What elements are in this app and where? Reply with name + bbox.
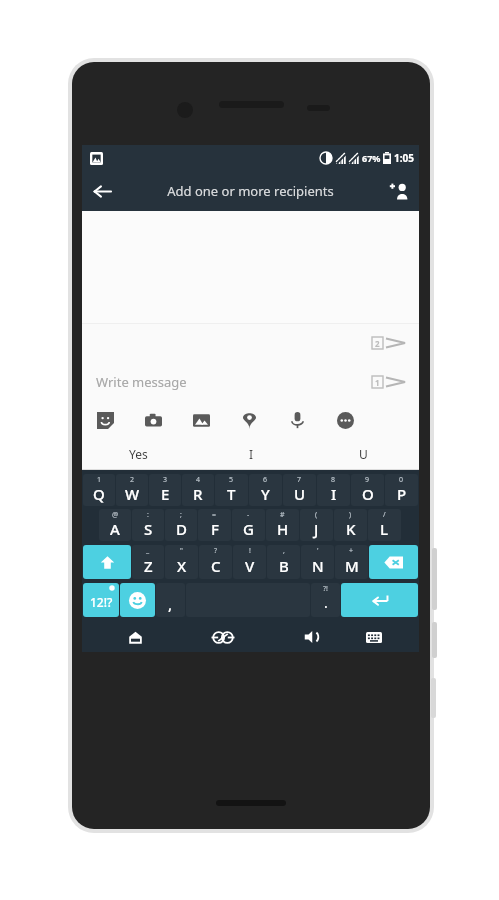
button[interactable]: Shift: [83, 545, 131, 579]
button[interactable]: More: [332, 407, 358, 433]
button[interactable]: 4: [182, 474, 214, 506]
staticText: J: [314, 519, 319, 539]
staticText: I: [331, 484, 337, 504]
button[interactable]: Keyboard settings: [361, 624, 387, 650]
staticText: ?: [214, 546, 218, 556]
button[interactable]: @: [99, 509, 131, 541]
button[interactable]: Backspace: [369, 545, 418, 579]
staticText: C: [211, 556, 221, 576]
button[interactable]: ?: [199, 545, 232, 579]
staticText: 8: [331, 475, 336, 485]
staticText: 1: [375, 377, 380, 388]
button[interactable]: Voice: [284, 407, 310, 433]
button[interactable]: Send SIM 1: [372, 375, 405, 389]
button[interactable]: Theme: [122, 624, 148, 650]
button[interactable]: 6: [249, 474, 282, 506]
staticText: =: [212, 510, 217, 520]
button[interactable]: 8: [317, 474, 350, 506]
button[interactable]: ,: [267, 545, 300, 579]
staticText: 0: [399, 475, 404, 485]
button[interactable]: U: [307, 438, 419, 469]
button[interactable]: 2: [116, 474, 148, 506]
staticText: 12!?: [90, 594, 113, 610]
button[interactable]: ): [334, 509, 367, 541]
staticText: K: [346, 519, 356, 539]
button[interactable]: ": [165, 545, 198, 579]
button[interactable]: -: [232, 509, 265, 541]
button[interactable]: #: [266, 509, 299, 541]
staticText: Y: [261, 484, 270, 504]
button[interactable]: _: [132, 545, 164, 579]
staticText: ): [349, 510, 352, 520]
button[interactable]: (: [300, 509, 333, 541]
button[interactable]: +: [335, 545, 368, 579]
staticText: -: [247, 510, 250, 520]
staticText: N: [312, 556, 324, 576]
button[interactable]: ,: [156, 583, 185, 617]
button[interactable]: 1: [83, 474, 115, 506]
staticText: 1:05: [394, 151, 414, 165]
staticText: _: [146, 546, 150, 556]
staticText: 4: [196, 475, 201, 485]
staticText: G: [243, 519, 254, 539]
button[interactable]: ': [301, 545, 334, 579]
staticText: :: [147, 510, 149, 520]
button[interactable]: Gallery: [188, 407, 214, 433]
button[interactable]: 3: [149, 474, 181, 506]
button[interactable]: Sticker: [92, 407, 118, 433]
staticText: 67%: [362, 152, 381, 164]
staticText: ": [180, 546, 183, 556]
button[interactable]: 9: [351, 474, 384, 506]
button[interactable]: Symbols: [83, 583, 119, 617]
staticText: Add one or more recipients: [167, 182, 334, 200]
staticText: O: [362, 484, 374, 504]
staticText: A: [110, 519, 120, 539]
staticText: 1: [97, 475, 102, 485]
staticText: 2: [130, 475, 135, 485]
staticText: @: [112, 510, 119, 520]
staticText: 2: [375, 338, 380, 349]
staticText: T: [227, 484, 236, 504]
staticText: E: [161, 484, 170, 504]
button[interactable]: Sound: [298, 624, 324, 650]
staticText: L: [380, 519, 389, 539]
button[interactable]: :: [132, 509, 164, 541]
button[interactable]: Swipe input: [208, 622, 238, 652]
button[interactable]: I: [195, 438, 307, 469]
staticText: .: [324, 593, 328, 612]
staticText: H: [277, 519, 289, 539]
button[interactable]: 5: [215, 474, 248, 506]
button[interactable]: /: [368, 509, 401, 541]
button[interactable]: Emoji: [120, 583, 155, 617]
button[interactable]: 0: [385, 474, 418, 506]
button[interactable]: Yes: [82, 438, 195, 469]
staticText: I: [249, 446, 254, 462]
staticText: P: [397, 484, 407, 504]
staticText: V: [245, 556, 255, 576]
staticText: B: [279, 556, 289, 576]
button[interactable]: Location: [236, 407, 262, 433]
button[interactable]: =: [198, 509, 231, 541]
button[interactable]: Camera: [140, 407, 166, 433]
staticText: (: [315, 510, 318, 520]
button[interactable]: ;: [165, 509, 197, 541]
staticText: U: [359, 446, 368, 462]
staticText: ?!: [323, 584, 328, 594]
staticText: U: [294, 484, 306, 504]
button[interactable]: Add recipient: [379, 171, 419, 211]
staticText: 7: [297, 475, 302, 485]
button[interactable]: Back: [82, 171, 122, 211]
staticText: ': [317, 546, 319, 556]
staticText: 5: [229, 475, 234, 485]
staticText: 9: [365, 475, 370, 485]
button[interactable]: !: [233, 545, 266, 579]
button[interactable]: Send SIM 2: [372, 336, 405, 350]
button[interactable]: Write message: [96, 373, 187, 391]
staticText: R: [193, 484, 203, 504]
button[interactable]: 7: [283, 474, 316, 506]
staticText: #: [280, 510, 285, 520]
button[interactable]: ?!: [311, 583, 340, 617]
staticText: S: [144, 519, 153, 539]
button[interactable]: Enter: [341, 583, 418, 617]
